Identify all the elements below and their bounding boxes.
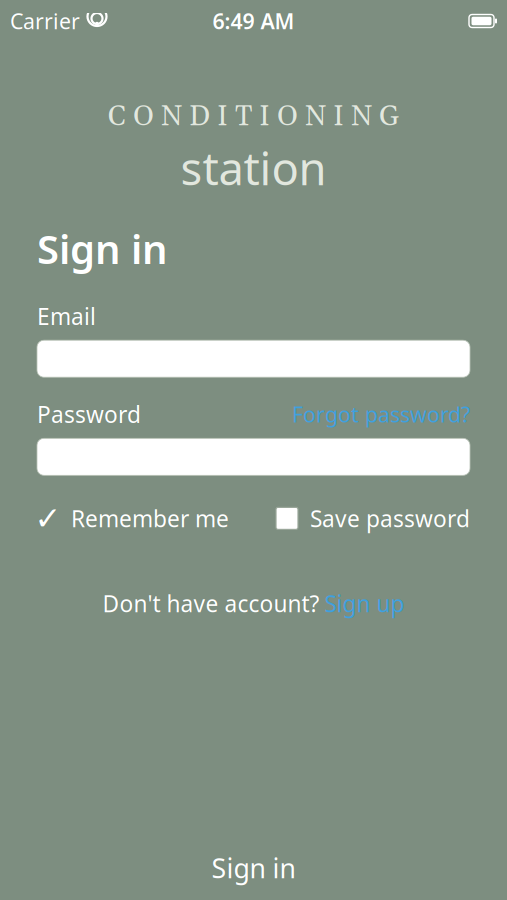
staticText: station (180, 137, 326, 199)
button[interactable]: ✓ (37, 497, 229, 539)
staticText: Sign in (211, 850, 295, 886)
button[interactable]: Forgot password? (292, 400, 470, 428)
staticText: Sign in (37, 222, 168, 275)
staticText: Carrier (10, 7, 80, 35)
staticText: ✓ (34, 500, 61, 536)
staticText: Email (37, 301, 96, 331)
staticText: Save password (310, 503, 470, 533)
staticText: Remember me (71, 503, 229, 533)
staticText: Forgot password? (292, 400, 470, 428)
button[interactable]: Don't have account? (102, 582, 404, 624)
staticText: Sign up (324, 588, 404, 618)
button[interactable]: Save password (276, 497, 470, 539)
staticText: C O N D I T I O N I N G (108, 99, 399, 135)
staticText: Password (37, 399, 141, 429)
staticText: Don't have account? (102, 588, 319, 618)
staticText: 6:49 AM (212, 7, 294, 35)
button[interactable]: Sign in (0, 846, 507, 890)
